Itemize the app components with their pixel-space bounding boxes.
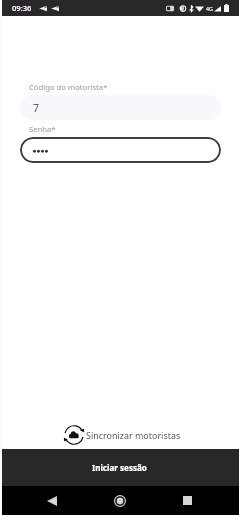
staticText: 09:36 [12,3,32,13]
button[interactable] [20,137,221,163]
button[interactable]: Back [36,486,68,515]
button[interactable]: Sincronizar motoristas [63,424,181,446]
staticText: Iniciar sessão [92,462,147,473]
button[interactable]: Recent apps [171,486,203,515]
button[interactable]: 7 [20,95,221,120]
staticText: 7 [33,101,40,115]
button[interactable]: Iniciar sessão [0,449,239,486]
staticText: Senha* [29,124,56,134]
button[interactable]: Home [104,486,136,515]
staticText: 4G [206,5,213,12]
staticText: Código do motorista* [29,82,108,92]
staticText: Sincronizar motoristas [86,429,181,441]
